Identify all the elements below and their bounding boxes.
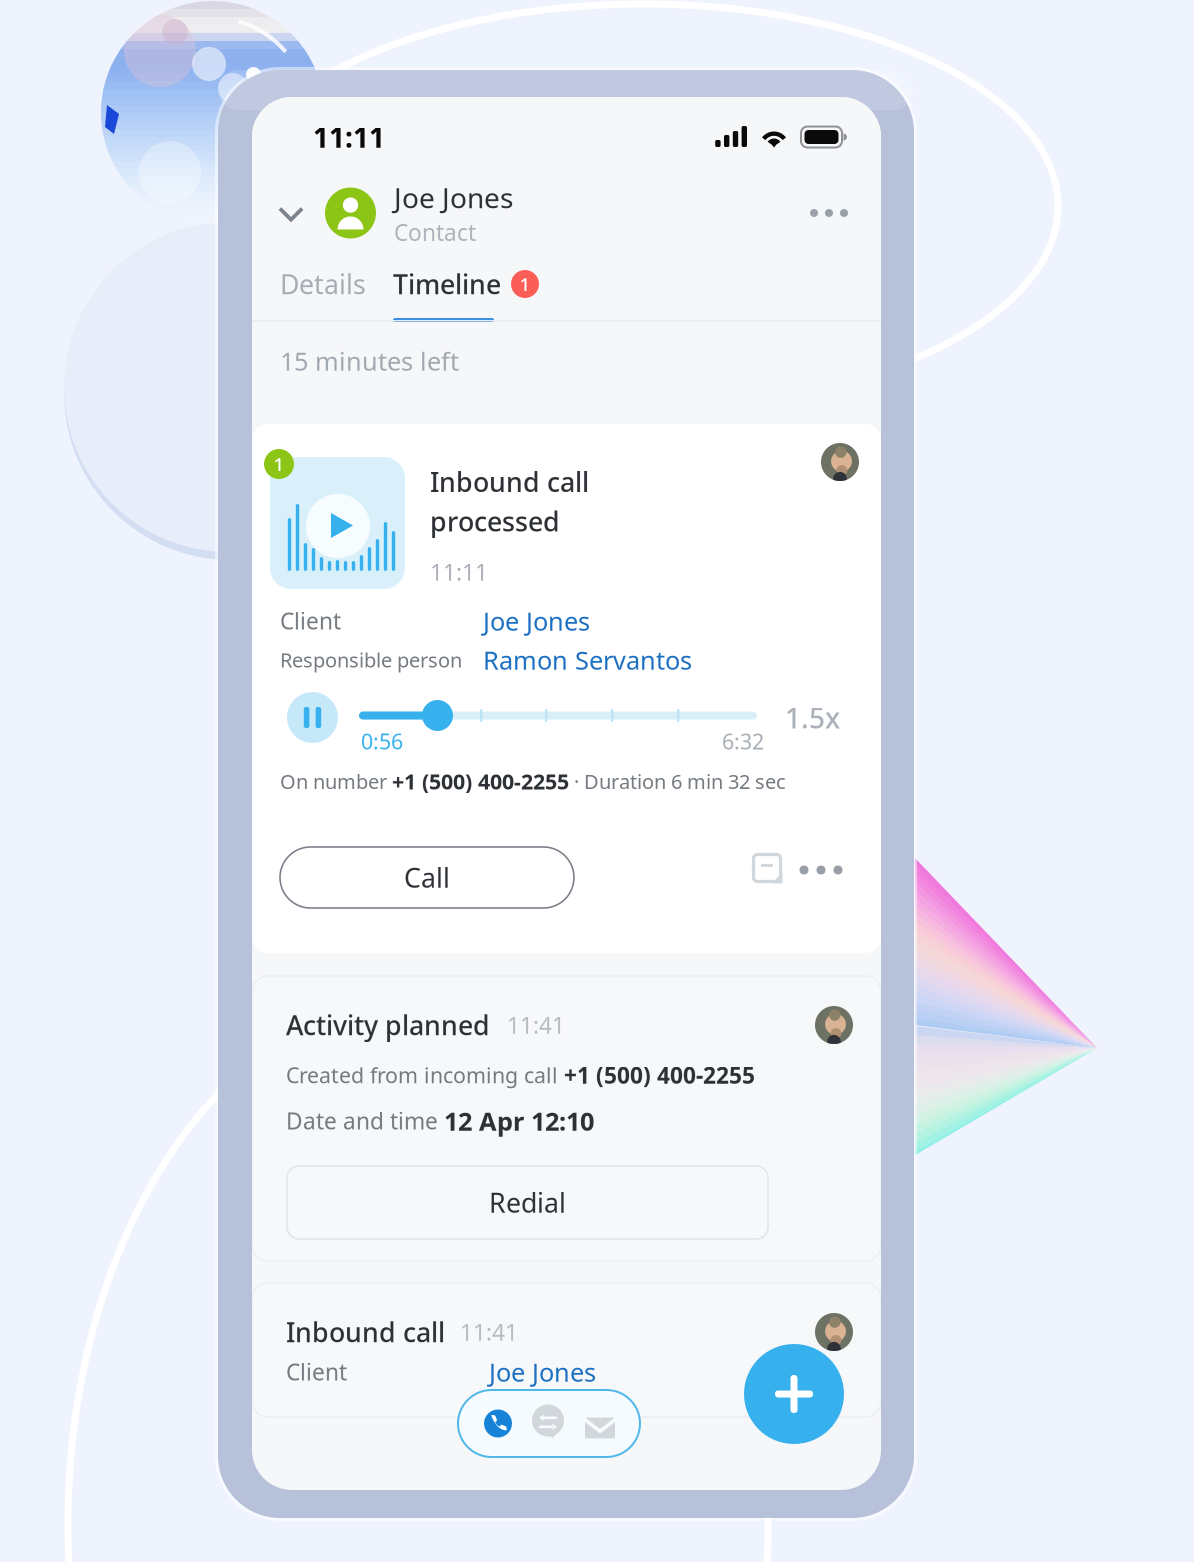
staticText: 11:41 (460, 1317, 518, 1347)
staticText: 15 minutes left (280, 344, 459, 378)
staticText: 11:11 (313, 118, 385, 156)
staticText: Client (286, 1357, 347, 1387)
button[interactable]: Email (582, 1405, 618, 1441)
staticText: Joe Jones (483, 604, 590, 638)
staticText: processed (430, 503, 560, 539)
button[interactable]: Joe Jones (252, 182, 881, 244)
staticText: · Duration 6 min 32 sec (569, 768, 786, 794)
staticText: Redial (489, 1185, 566, 1220)
staticText: Contact (394, 217, 476, 247)
button[interactable]: Add (744, 1344, 844, 1444)
staticText: Client (280, 606, 341, 636)
staticText: Joe Jones (394, 179, 513, 216)
button[interactable]: Joe Jones (489, 1355, 596, 1389)
staticText: 0:56 (361, 727, 403, 755)
button[interactable]: Call (280, 847, 574, 908)
button[interactable]: Ramon Servantos (483, 643, 692, 677)
staticText: 11:41 (507, 1010, 565, 1040)
button[interactable]: Redial (287, 1166, 768, 1239)
button[interactable]: Timeline (393, 267, 539, 301)
staticText: 11:11 (430, 557, 488, 587)
staticText: Details (280, 266, 366, 302)
staticText: Activity planned (286, 1007, 490, 1043)
staticText: Inbound call (430, 464, 589, 499)
button[interactable]: Note (747, 850, 787, 886)
staticText: Ramon Servantos (483, 643, 692, 677)
staticText: 1.5x (785, 699, 840, 736)
button[interactable]: More options (800, 852, 842, 888)
staticText: Joe Jones (489, 1355, 596, 1389)
staticText: On number (280, 768, 392, 794)
button[interactable]: Pause (287, 692, 338, 743)
button[interactable]: Call (478, 1403, 518, 1443)
staticText: Timeline (393, 266, 501, 302)
staticText: +1 (500) 400-2255 (564, 1060, 755, 1090)
button[interactable]: Joe Jones (483, 604, 590, 638)
staticText: Created from incoming call (286, 1061, 564, 1089)
button[interactable]: Details (280, 267, 366, 301)
button[interactable]: Chat (529, 1401, 569, 1441)
staticText: +1 (500) 400-2255 (392, 767, 569, 795)
staticText: 1 (273, 452, 284, 476)
staticText: Responsible person (280, 646, 462, 673)
staticText: Call (404, 860, 450, 895)
staticText: 6:32 (722, 727, 764, 755)
staticText: 1 (519, 272, 530, 296)
staticText: Inbound call (286, 1314, 445, 1350)
staticText: Date and time (286, 1106, 444, 1136)
staticText: 12 Apr 12:10 (444, 1104, 594, 1138)
